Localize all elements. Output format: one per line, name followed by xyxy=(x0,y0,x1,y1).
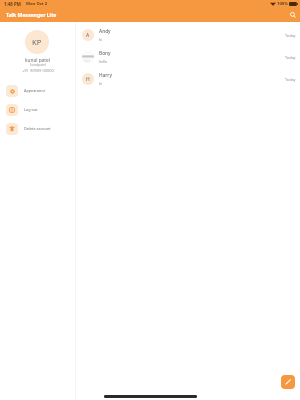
button[interactable]: Appearance xyxy=(0,81,75,100)
staticText: 100% xyxy=(277,1,288,7)
staticText: Bony xyxy=(99,50,111,57)
button[interactable]: Compose new message xyxy=(281,375,295,389)
staticText: kunalpatel xyxy=(30,63,46,67)
staticText: hello xyxy=(99,59,108,64)
staticText: Harry xyxy=(99,72,112,79)
staticText: A xyxy=(86,32,90,39)
staticText: Appearance xyxy=(24,88,46,93)
staticText: kunal patel xyxy=(25,57,50,64)
staticText: Today xyxy=(285,77,296,82)
staticText: H xyxy=(86,76,90,83)
staticText: hi xyxy=(99,37,103,42)
staticText: Today xyxy=(285,55,296,60)
button[interactable]: A xyxy=(76,24,300,46)
staticText: hi xyxy=(99,81,103,86)
staticText: KP xyxy=(32,37,42,47)
button[interactable]: Search xyxy=(288,10,298,20)
staticText: +91 90909 00000 xyxy=(22,68,54,73)
staticText: Andy xyxy=(99,28,111,35)
staticText: 1:48 PM xyxy=(4,1,21,7)
button[interactable]: Delete account xyxy=(0,119,75,138)
button[interactable]: H xyxy=(76,68,300,90)
staticText: Log out xyxy=(24,107,38,112)
staticText: Mon Oct 2 xyxy=(26,1,48,7)
staticText: Today xyxy=(285,33,296,38)
staticText: Talk Messenger Lite xyxy=(6,12,57,19)
button[interactable]: Bony xyxy=(76,46,300,68)
staticText: Delete account xyxy=(24,126,51,131)
button[interactable]: Log out xyxy=(0,100,75,119)
